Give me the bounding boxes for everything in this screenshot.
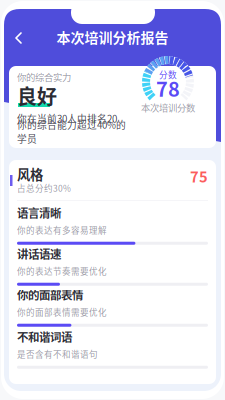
- staticText: 语言清晰: [17, 204, 61, 221]
- staticText: 风格: [17, 164, 43, 184]
- staticText: 是否含有不和谐语句: [17, 348, 98, 360]
- staticText: 本次培训分数: [141, 101, 195, 114]
- staticText: 良好: [17, 81, 57, 110]
- staticText: 占总分约30%: [17, 182, 71, 194]
- staticText: 你在当前30人中排名20: [17, 111, 117, 126]
- staticText: 你的综合实力: [17, 70, 71, 84]
- staticText: 你的表达节奏需要优化: [17, 265, 107, 277]
- staticText: 本次培训分析报告: [56, 27, 168, 47]
- staticText: 分数: [159, 68, 177, 81]
- staticText: 75: [190, 165, 208, 187]
- staticText: 78: [156, 73, 180, 102]
- staticText: 讲话语速: [17, 245, 61, 262]
- staticText: 不和谐词语: [17, 328, 72, 345]
- button[interactable]: Back: [11, 30, 27, 46]
- staticText: 你的面部表情: [17, 286, 83, 303]
- staticText: 你的表达有多容易理解: [17, 224, 107, 236]
- staticText: 你的面部表情需要优化: [17, 306, 107, 318]
- staticText: 你的综合能力超过40%的学员: [17, 117, 126, 146]
